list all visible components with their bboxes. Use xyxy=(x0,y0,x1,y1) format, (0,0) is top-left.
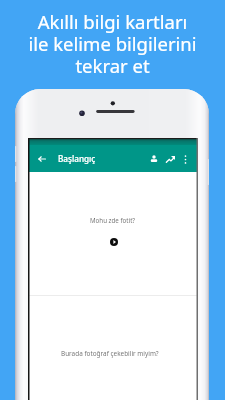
button[interactable]: More options xyxy=(178,149,192,169)
staticText: Akıllı bilgi kartları ile kelime bilgile… xyxy=(28,9,197,79)
button[interactable]: Play audio xyxy=(110,238,118,246)
staticText: Mohu zde fotit? xyxy=(90,216,136,224)
button[interactable]: Account xyxy=(146,149,162,169)
staticText: Burada fotoğraf çekebilir miyim? xyxy=(61,349,159,358)
staticText: Başlangıç xyxy=(58,153,96,164)
button[interactable]: Statistics xyxy=(162,149,178,169)
button[interactable]: Back xyxy=(33,149,50,169)
